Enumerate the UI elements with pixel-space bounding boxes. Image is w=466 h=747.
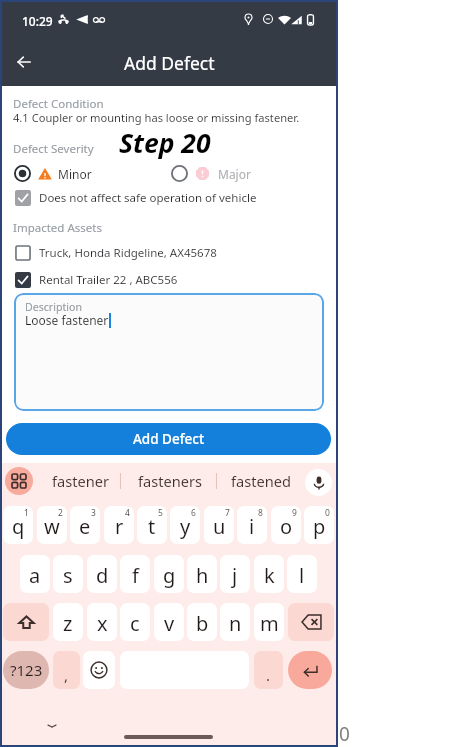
staticText: Loose fastener [25,312,109,328]
staticText: Does not affect safe operation of vehicl… [39,190,257,206]
staticText: Rental Trailer 22 , ABC556 [39,272,178,288]
button[interactable]: Shift [3,603,49,641]
button[interactable]: Does not affect safe operation of vehicl… [15,189,257,207]
staticText: 4 [125,507,130,519]
staticText: y [180,513,191,540]
staticText: 4.1 Coupler or mounting has loose or mis… [13,110,300,125]
staticText: t [148,513,156,540]
staticText: Impacted Assets [13,220,102,236]
button[interactable]: v [154,603,184,641]
staticText: Minor [58,166,92,182]
staticText: l [299,562,305,589]
button[interactable]: p [304,506,334,544]
button[interactable]: fastener [48,467,112,494]
button[interactable]: Minor [14,164,92,183]
button[interactable]: Description [14,293,324,411]
staticText: Step 20 [119,125,211,161]
staticText: 9 [292,507,297,519]
staticText: x [97,610,108,637]
button[interactable]: w [37,506,67,544]
button[interactable]: fastened [227,467,295,494]
button[interactable]: , [53,651,80,689]
staticText: Description [25,300,83,314]
staticText: k [264,562,275,589]
staticText: w [44,513,60,540]
button[interactable]: y [170,506,200,544]
button[interactable]: u [204,506,234,544]
staticText: v [164,610,175,637]
staticText: e [79,513,91,540]
staticText: Defect Severity [13,141,94,157]
button[interactable]: a [20,555,50,593]
staticText: g [163,562,176,589]
staticText: 2 [58,507,63,519]
staticText: Defect Condition [13,96,104,112]
staticText: , [64,665,69,685]
staticText: r [115,513,124,540]
staticText: q [12,513,25,540]
staticText: f [132,562,139,589]
staticText: 7 [225,507,230,519]
staticText: fasteners [138,471,202,491]
button[interactable]: Voice input [305,469,332,496]
button[interactable]: h [187,555,217,593]
staticText: 1 [24,507,29,519]
button[interactable]: . [254,651,283,689]
button[interactable]: Enter [288,651,332,689]
staticText: 0 [325,507,330,519]
button[interactable]: c [120,603,150,641]
button[interactable]: o [271,506,301,544]
button[interactable]: j [220,555,250,593]
button[interactable]: i [237,506,267,544]
staticText: 3 [91,507,96,519]
button[interactable]: Add Defect [6,423,331,455]
button[interactable]: l [287,555,317,593]
staticText: z [63,610,73,637]
button[interactable]: ?123 [3,651,49,689]
button[interactable]: Emoji [83,651,115,689]
staticText: 0 [339,721,350,747]
staticText: a [29,562,41,589]
button[interactable]: s [53,555,83,593]
staticText: 8 [258,507,263,519]
staticText: 6 [191,507,196,519]
button[interactable]: Major [171,164,251,183]
staticText: c [130,610,140,637]
button[interactable]: k [254,555,284,593]
staticText: p [313,513,326,540]
staticText: 5 [158,507,163,519]
staticText: ?123 [10,660,43,680]
staticText: . [266,665,271,685]
staticText: n [229,610,242,637]
button[interactable]: f [120,555,150,593]
button[interactable]: e [70,506,100,544]
button[interactable]: Hide keyboard [42,716,62,736]
button[interactable]: m [254,603,284,641]
staticText: i [249,513,255,540]
staticText: o [280,513,293,540]
button[interactable]: g [154,555,184,593]
staticText: fastener [52,471,109,491]
button[interactable]: Back [5,43,43,81]
button[interactable]: Backspace [288,603,334,641]
button[interactable]: Truck, Honda Ridgeline, AX45678 [15,244,217,262]
staticText: s [63,562,73,589]
button[interactable]: t [137,506,167,544]
button[interactable]: r [104,506,134,544]
button[interactable]: b [187,603,217,641]
staticText: Major [218,166,251,182]
staticText: 10:29 [22,13,53,29]
staticText: Truck, Honda Ridgeline, AX45678 [39,245,217,261]
staticText: d [96,562,109,589]
button[interactable]: n [220,603,250,641]
staticText: u [213,513,226,540]
staticText: Add Defect [133,430,205,448]
button[interactable]: z [53,603,83,641]
button[interactable]: x [87,603,117,641]
button[interactable]: Rental Trailer 22 , ABC556 [15,271,178,289]
button[interactable]: Keyboard toolbar [5,467,33,495]
button[interactable]: d [87,555,117,593]
button[interactable]: q [3,506,33,544]
button[interactable]: fasteners [133,467,207,494]
